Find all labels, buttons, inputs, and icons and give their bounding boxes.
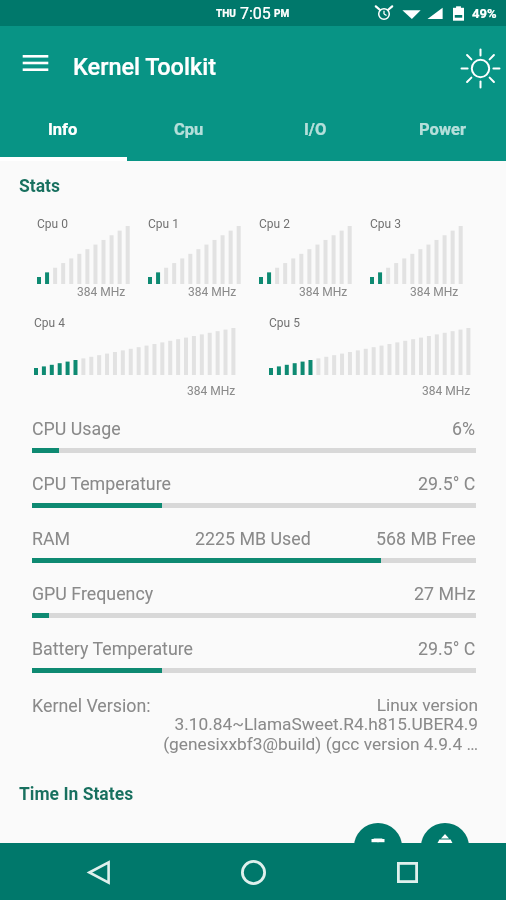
staticText: 27 MHz <box>414 583 476 604</box>
staticText: 6% <box>452 418 476 439</box>
staticText: Cpu 3 <box>370 217 401 231</box>
staticText: 384 MHz <box>422 384 471 398</box>
staticText: Cpu 4 <box>34 316 65 330</box>
staticText: 384 MHz <box>188 285 237 299</box>
staticText: Time In States <box>19 784 134 805</box>
staticText: Power <box>419 120 466 139</box>
button[interactable]: Brightness <box>456 44 505 93</box>
staticText: 384 MHz <box>299 285 348 299</box>
staticText: 384 MHz <box>77 285 126 299</box>
staticText: Cpu 5 <box>269 316 300 330</box>
staticText: Info <box>48 120 78 139</box>
staticText: GPU Frequency <box>32 583 154 604</box>
staticText: Linux version 3.10.84~LlamaSweet.R4.h815… <box>151 695 478 755</box>
button[interactable]: Power <box>379 105 506 161</box>
staticText: THU <box>216 8 236 20</box>
staticText: 568 MB Free <box>376 528 476 549</box>
staticText: 7:05 <box>240 4 271 23</box>
button[interactable]: I/O <box>252 105 379 161</box>
staticText: Cpu 1 <box>148 217 179 231</box>
button[interactable]: Recent apps <box>381 846 433 898</box>
staticText: Kernel Version: <box>32 695 151 716</box>
staticText: Kernel Toolkit <box>73 53 217 81</box>
button[interactable]: Back <box>73 846 125 898</box>
staticText: Battery Temperature <box>32 638 194 659</box>
button[interactable]: Info <box>0 105 126 161</box>
staticText: Cpu 0 <box>37 217 68 231</box>
staticText: Cpu <box>174 120 204 139</box>
staticText: 384 MHz <box>187 384 236 398</box>
staticText: 29.5° C <box>418 473 476 494</box>
staticText: I/O <box>304 120 327 139</box>
staticText: 49% <box>472 6 497 21</box>
button[interactable]: Apply settings <box>354 823 402 871</box>
staticText: Cpu 2 <box>259 217 290 231</box>
button[interactable]: Cpu <box>126 105 252 161</box>
button[interactable]: Home <box>227 846 279 898</box>
staticText: 2225 MB Used <box>195 528 311 549</box>
button[interactable]: Save profile <box>421 823 469 871</box>
staticText: 29.5° C <box>418 638 476 659</box>
staticText: CPU Usage <box>32 418 121 439</box>
staticText: 384 MHz <box>410 285 459 299</box>
button[interactable]: Open navigation drawer <box>10 40 60 86</box>
staticText: PM <box>274 8 290 20</box>
staticText: RAM <box>32 528 71 549</box>
staticText: CPU Temperature <box>32 473 171 494</box>
staticText: Stats <box>19 176 60 197</box>
